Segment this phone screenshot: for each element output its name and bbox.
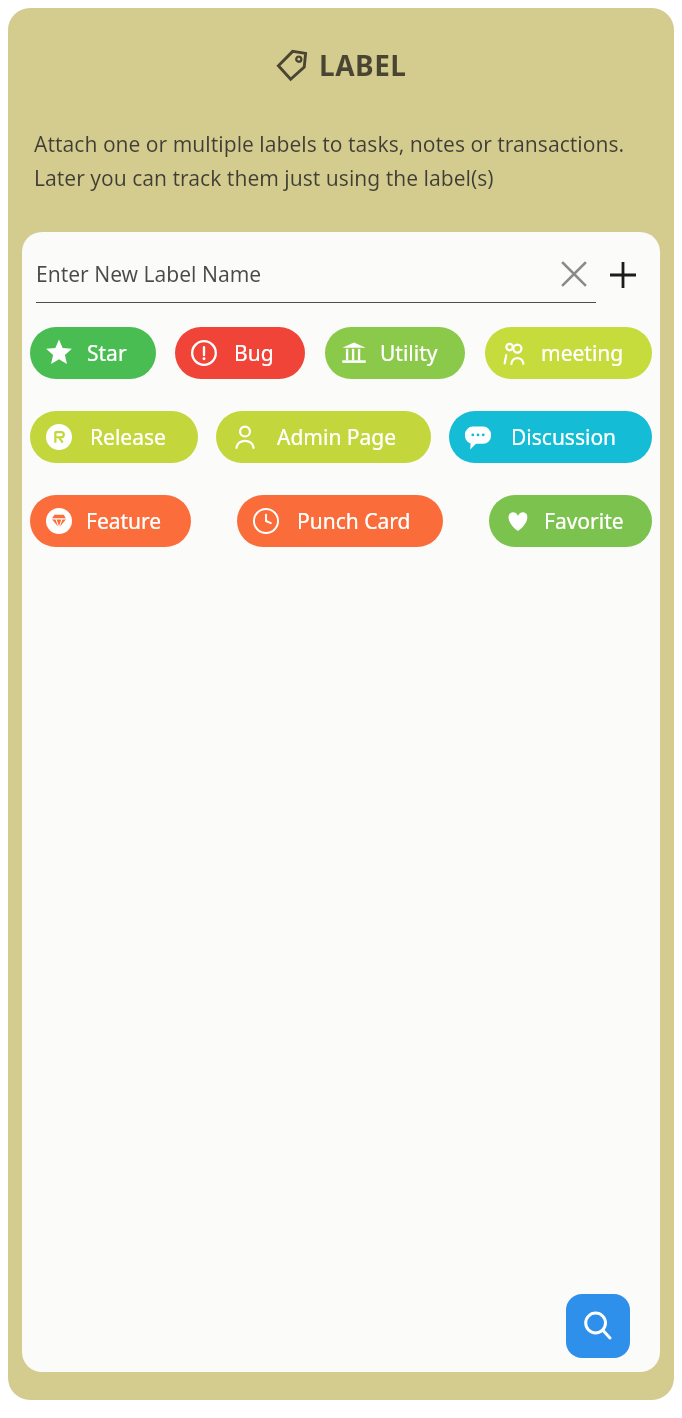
button[interactable]: Clear	[552, 252, 596, 296]
staticText: Favorite	[544, 507, 624, 536]
button[interactable]: Search	[566, 1294, 630, 1358]
staticText: Admin Page	[277, 423, 397, 452]
button[interactable]: Feature	[30, 495, 191, 547]
staticText: Discussion	[511, 423, 617, 452]
button[interactable]: Utility	[325, 327, 465, 379]
staticText: Release	[90, 423, 166, 452]
staticText: Attach one or multiple labels to tasks, …	[34, 130, 648, 192]
button[interactable]: Add label	[596, 248, 650, 302]
button[interactable]: Star	[30, 327, 156, 379]
button[interactable]: Discussion	[449, 411, 652, 463]
staticText: meeting	[541, 339, 624, 368]
staticText: Feature	[86, 507, 162, 536]
button[interactable]: meeting	[485, 327, 652, 379]
button[interactable]: Admin Page	[216, 411, 431, 463]
staticText: Utility	[380, 339, 438, 368]
button[interactable]: Release	[30, 411, 198, 463]
button[interactable]: Punch Card	[237, 495, 443, 547]
button[interactable]: Favorite	[489, 495, 652, 547]
staticText: Punch Card	[297, 507, 411, 536]
button[interactable]: Bug	[175, 327, 305, 379]
staticText: Star	[87, 339, 127, 368]
staticText: Enter New Label Name	[36, 260, 262, 289]
staticText: Bug	[234, 339, 274, 368]
staticText: LABEL	[319, 46, 407, 84]
